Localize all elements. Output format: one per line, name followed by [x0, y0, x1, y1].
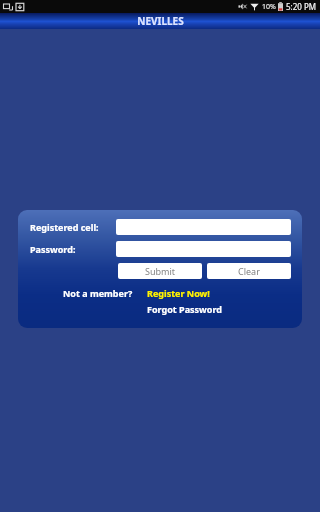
button[interactable]: Password:	[116, 241, 291, 257]
button[interactable]: Forgot Password	[147, 303, 222, 315]
button[interactable]: Clear	[207, 263, 291, 279]
staticText: Submit	[145, 265, 176, 277]
staticText: NEVILLES	[137, 14, 184, 28]
staticText: Registered cell:	[30, 221, 99, 233]
staticText: 5:20 PM	[286, 1, 317, 12]
staticText: Not a member?	[63, 287, 133, 299]
staticText: Register Now!	[147, 287, 210, 299]
staticText: Clear	[238, 265, 260, 277]
button[interactable]: Registered cell:	[116, 219, 291, 235]
staticText: Password:	[30, 243, 76, 255]
button[interactable]: Submit	[118, 263, 202, 279]
button[interactable]: Register Now!	[147, 287, 210, 299]
staticText: Forgot Password	[147, 303, 222, 315]
staticText: 10%	[262, 2, 276, 12]
